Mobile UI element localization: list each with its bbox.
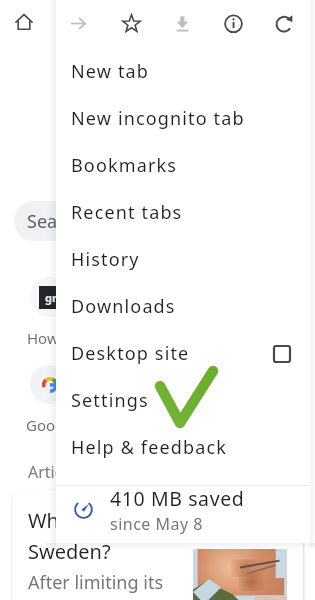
button[interactable]: Recent tabs (56, 189, 310, 236)
button[interactable]: Download (163, 4, 201, 42)
button[interactable]: Desktop site (56, 330, 310, 377)
button[interactable] (30, 365, 69, 404)
staticText: Recent tabs (71, 200, 183, 225)
button[interactable]: Bookmark (112, 4, 150, 42)
staticText: What is happening in Sweden? (28, 507, 248, 565)
button[interactable]: Search or type web address (14, 201, 254, 241)
button[interactable]: gr (30, 277, 70, 317)
staticText: Search or type web address (27, 209, 254, 234)
staticText: New tab (71, 59, 150, 84)
button[interactable]: 410 MB saved (56, 481, 310, 538)
button[interactable]: New incognito tab (56, 95, 310, 142)
staticText: gr (45, 290, 57, 305)
staticText: 410 MB saved (110, 485, 245, 512)
staticText: Help & feedback (71, 435, 227, 460)
button[interactable]: Bookmarks (56, 142, 310, 189)
button[interactable]: Page info (214, 4, 252, 42)
staticText: Articles for you (28, 461, 142, 483)
button[interactable]: New tab (56, 48, 310, 95)
staticText: After limiting its (28, 570, 163, 595)
staticText: History (71, 247, 140, 272)
staticText: since May 8 (110, 513, 204, 535)
button[interactable]: Downloads (56, 283, 310, 330)
staticText: Bookmarks (71, 153, 178, 178)
button[interactable]: Help & feedback (56, 424, 310, 471)
staticText: Downloads (71, 294, 176, 319)
button[interactable]: Home (14, 12, 34, 32)
button[interactable]: History (56, 236, 310, 283)
button[interactable]: Forward (59, 4, 97, 42)
staticText: New incognito tab (71, 106, 245, 131)
staticText: Settings (71, 388, 149, 413)
staticText: How to ... (27, 328, 94, 348)
button[interactable] (12, 490, 303, 600)
button[interactable]: Settings (56, 377, 310, 424)
staticText: Google (26, 415, 77, 435)
staticText: Desktop site (71, 341, 190, 366)
button[interactable]: Reload (265, 4, 303, 42)
